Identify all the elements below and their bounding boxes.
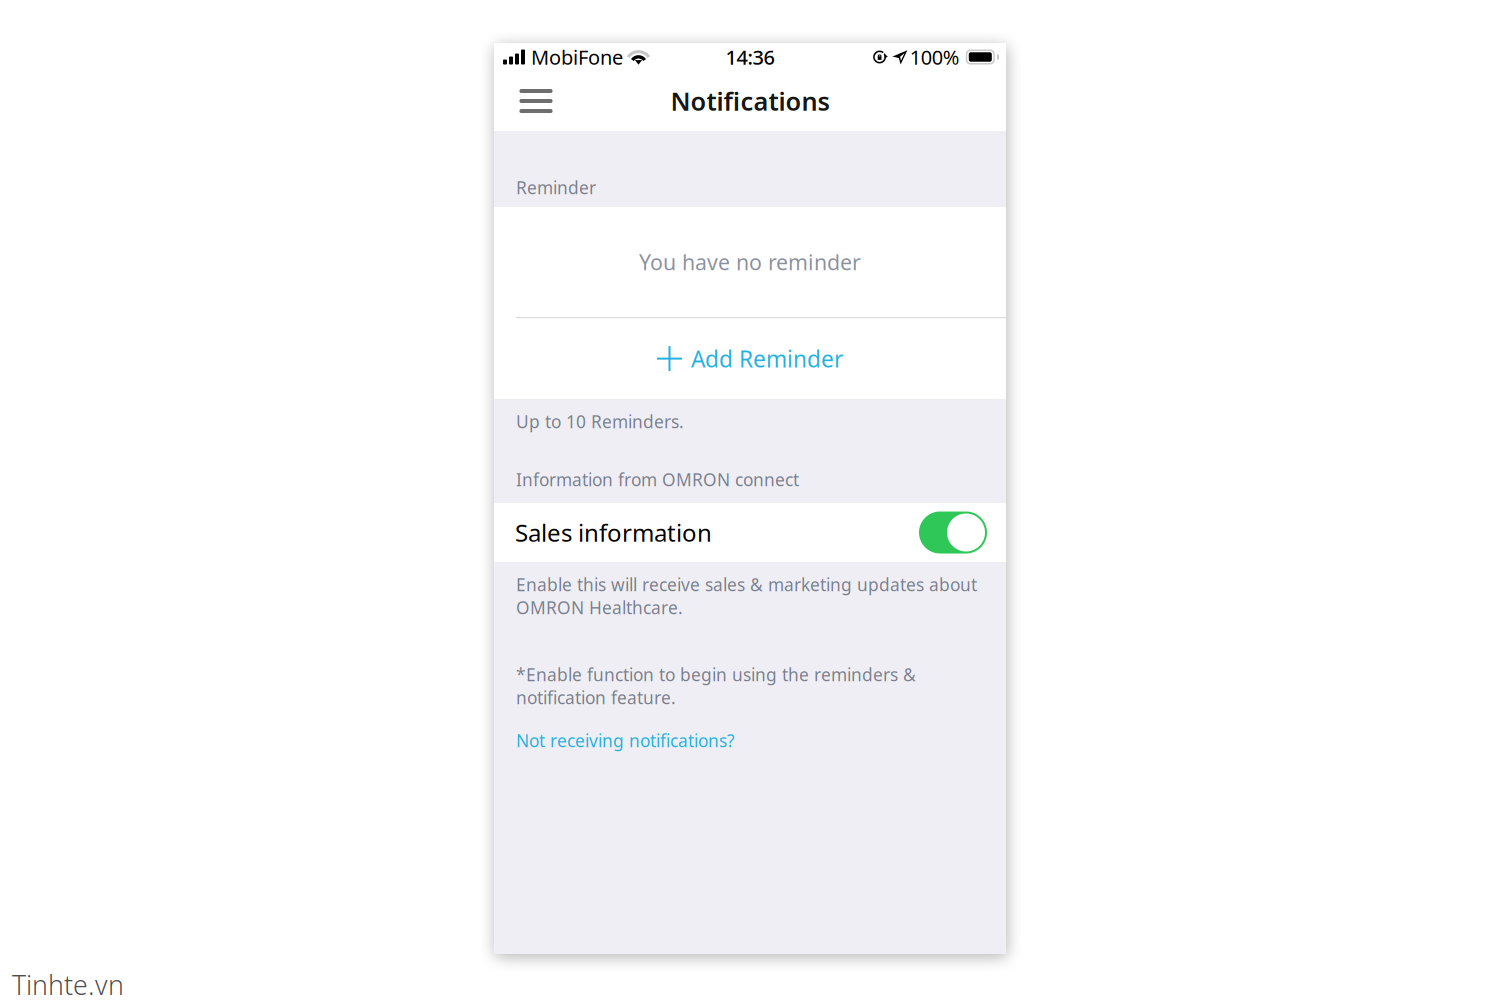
button[interactable]: Add Reminder bbox=[494, 318, 1006, 399]
staticText: Tinhte.vn bbox=[12, 967, 124, 1000]
staticText: Up to 10 Reminders. bbox=[516, 410, 684, 433]
staticText: Information from OMRON connect bbox=[516, 468, 799, 491]
button[interactable]: Sales information bbox=[494, 503, 1006, 562]
staticText: 14:36 bbox=[725, 44, 774, 70]
staticText: 100% bbox=[910, 44, 960, 70]
staticText: Not receiving notifications? bbox=[516, 729, 735, 752]
staticText: You have no reminder bbox=[639, 248, 861, 276]
staticText: *Enable function to begin using the remi… bbox=[516, 663, 916, 709]
staticText: Enable this will receive sales & marketi… bbox=[516, 573, 977, 619]
staticText: Add Reminder bbox=[691, 343, 843, 374]
staticText: Notifications bbox=[670, 84, 829, 118]
staticText: MobiFone bbox=[531, 44, 623, 70]
staticText: Reminder bbox=[516, 176, 596, 199]
staticText: Sales information bbox=[515, 517, 712, 548]
button[interactable]: Menu bbox=[506, 71, 566, 131]
button[interactable]: Not receiving notifications? bbox=[516, 709, 992, 752]
